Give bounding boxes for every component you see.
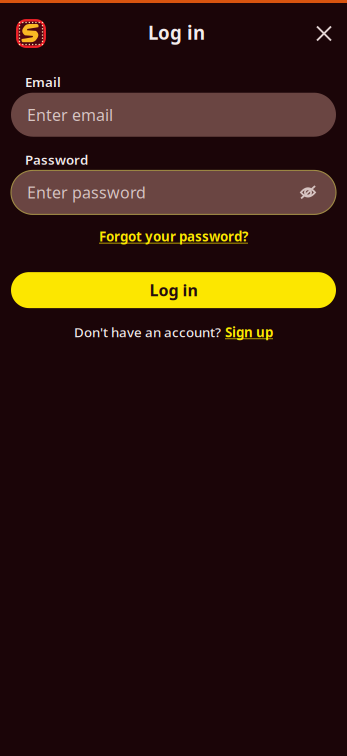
staticText: Enter password — [27, 182, 146, 203]
staticText: Enter email — [27, 104, 113, 125]
staticText: Log in — [149, 279, 197, 301]
staticText: Log in — [148, 20, 205, 45]
staticText: Sign up — [225, 323, 273, 341]
staticText: Email — [25, 73, 61, 91]
button[interactable]: Log in — [11, 272, 336, 308]
button[interactable]: Forgot your password? — [89, 221, 258, 251]
staticText: Password — [25, 151, 88, 168]
button[interactable]: Enter email — [11, 93, 336, 137]
button[interactable]: Sign up — [225, 323, 273, 341]
button[interactable]: Enter password — [11, 170, 296, 214]
staticText: Forgot your password? — [99, 227, 248, 245]
button[interactable]: Close — [309, 18, 339, 48]
button[interactable]: Show password — [296, 180, 320, 204]
staticText: Don't have an account? — [74, 323, 221, 341]
